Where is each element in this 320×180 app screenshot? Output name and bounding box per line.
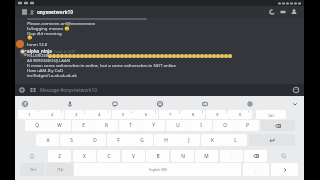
- button[interactable]: I: [189, 120, 212, 131]
- button[interactable]: 4: [88, 110, 111, 119]
- button[interactable]: R: [95, 120, 118, 131]
- staticText: E: [82, 122, 85, 129]
- staticText: onyxnetwork10: [37, 9, 73, 15]
- staticText: 6: [145, 112, 148, 118]
- button[interactable]: V: [122, 150, 145, 162]
- button[interactable]: G: [130, 134, 153, 146]
- staticText: Del: [268, 113, 274, 117]
- button[interactable]: F: [107, 134, 130, 146]
- staticText: Message #onyxnetwork10: [40, 87, 97, 93]
- staticText: B: [156, 153, 160, 160]
- button[interactable]: 2: [41, 110, 64, 119]
- button[interactable]: Start voice call: [267, 7, 277, 17]
- staticText: ?1#: [57, 167, 63, 172]
- staticText: 2: [51, 112, 54, 118]
- button[interactable]: Add attachment: [17, 85, 27, 95]
- staticText: Today at 14:07: [54, 50, 76, 54]
- staticText: im/fodget/i.a.ak.ak.ak.ak: [27, 72, 77, 78]
- button[interactable]: Y: [142, 120, 165, 131]
- button[interactable]: Emoji picker: [291, 85, 301, 95]
- staticText: 7: [169, 112, 172, 118]
- button[interactable]: K: [201, 134, 224, 146]
- staticText: S: [70, 137, 73, 144]
- button[interactable]: J: [177, 134, 200, 146]
- button[interactable]: O: [213, 120, 236, 131]
- button[interactable]: Z: [48, 150, 71, 162]
- staticText: U: [176, 122, 180, 129]
- button[interactable]: Google Assistant: [19, 98, 30, 109]
- button[interactable]: Ctrl: [20, 163, 45, 176]
- button[interactable]: D: [83, 134, 106, 146]
- button[interactable]: W: [48, 120, 71, 131]
- button[interactable]: P: [236, 120, 259, 131]
- button[interactable]: S: [60, 134, 83, 146]
- staticText: 5: [122, 112, 125, 118]
- button[interactable]: Open navigation drawer: [19, 6, 29, 16]
- staticText: All 9092346GUJ-LAAN: [27, 57, 71, 63]
- button[interactable]: B: [146, 150, 169, 162]
- button[interactable]: Emoji: [154, 98, 165, 109]
- button[interactable]: A: [36, 134, 59, 146]
- staticText: T: [129, 122, 132, 129]
- button[interactable]: Member list: [289, 7, 299, 17]
- staticText: Z: [58, 153, 61, 160]
- button[interactable]: Q: [25, 120, 48, 131]
- button[interactable]: X: [73, 150, 96, 162]
- button[interactable]: Next: [271, 163, 298, 176]
- button[interactable]: 5: [112, 110, 135, 119]
- button[interactable]: Backspace: [244, 150, 267, 162]
- staticText: =: [107, 110, 109, 114]
- button[interactable]: H: [154, 134, 177, 146]
- staticText: +: [131, 110, 133, 114]
- button[interactable]: Open gallery: [28, 85, 38, 95]
- button[interactable]: 7: [159, 110, 182, 119]
- button[interactable]: English (UK): [74, 163, 241, 176]
- staticText: 1: [28, 112, 31, 118]
- staticText: M: [204, 153, 209, 160]
- button[interactable]: 0: [229, 110, 252, 119]
- button[interactable]: ?1#: [46, 163, 73, 176]
- staticText: V: [132, 153, 135, 160]
- button[interactable]: Del: [256, 110, 286, 119]
- button[interactable]: M: [195, 150, 218, 162]
- button[interactable]: Voice input: [64, 98, 75, 109]
- button[interactable]: Pinned messages: [278, 7, 288, 17]
- button[interactable]: 1: [18, 110, 41, 119]
- staticText: O: [223, 122, 227, 129]
- staticText: Q: [35, 122, 39, 129]
- button[interactable]: Stickers: [199, 98, 210, 109]
- staticText: 9: [216, 112, 219, 118]
- staticText: {: [202, 110, 203, 114]
- button[interactable]: C: [97, 150, 120, 162]
- button[interactable]: 6: [135, 110, 158, 119]
- button[interactable]: 3: [65, 110, 88, 119]
- button[interactable]: T: [119, 120, 142, 131]
- button[interactable]: Collapse toolbar: [289, 98, 300, 109]
- button[interactable]: 8: [182, 110, 205, 119]
- staticText: #: [30, 8, 34, 16]
- staticText: It mean some onlinesvbm in online, but a…: [27, 62, 176, 68]
- button[interactable]: Backspace: [261, 120, 295, 131]
- button[interactable]: U: [166, 120, 189, 131]
- staticText: N: [181, 153, 185, 160]
- button[interactable]: Shift: [20, 150, 43, 162]
- button[interactable]: E: [72, 120, 95, 131]
- staticText: 0: [239, 112, 242, 118]
- staticText: \: [61, 110, 62, 114]
- staticText: X: [83, 153, 86, 160]
- button[interactable]: N: [171, 150, 194, 162]
- staticText: W: [57, 122, 62, 129]
- button[interactable]: Enter: [249, 134, 295, 146]
- button[interactable]: Settings: [244, 98, 255, 109]
- button[interactable]: L: [224, 134, 247, 146]
- staticText: }: [226, 110, 227, 114]
- button[interactable]: 9: [206, 110, 229, 119]
- button[interactable]: Clipboard: [109, 98, 120, 109]
- staticText: G: [140, 137, 144, 144]
- staticText: 8: [192, 112, 195, 118]
- staticText: F: [117, 137, 120, 144]
- staticText: How uAM.B.y CaD: [27, 67, 64, 73]
- button[interactable]: Search: [271, 150, 297, 162]
